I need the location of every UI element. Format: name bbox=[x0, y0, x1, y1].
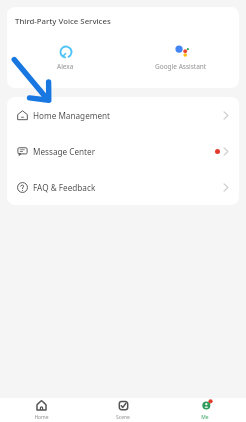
button[interactable]: FAQ & Feedback bbox=[7, 169, 239, 205]
staticText: Home bbox=[34, 414, 49, 421]
button[interactable]: Alexa bbox=[57, 45, 74, 71]
button[interactable]: Message Center bbox=[7, 133, 239, 169]
button[interactable]: Google Assistant bbox=[155, 45, 207, 71]
staticText: Me bbox=[201, 414, 209, 421]
staticText: FAQ & Feedback bbox=[33, 182, 96, 193]
button[interactable]: Home Management bbox=[7, 97, 239, 133]
staticText: Home Management bbox=[33, 110, 111, 121]
staticText: Google Assistant bbox=[155, 62, 207, 71]
staticText: Message Center bbox=[33, 146, 96, 157]
button[interactable]: Scene bbox=[82, 398, 164, 422]
staticText: Alexa bbox=[57, 62, 74, 71]
button[interactable]: Me bbox=[164, 398, 246, 422]
staticText: Third-Party Voice Services bbox=[15, 16, 111, 27]
button[interactable]: Home bbox=[0, 398, 82, 422]
staticText: Scene bbox=[116, 414, 130, 421]
